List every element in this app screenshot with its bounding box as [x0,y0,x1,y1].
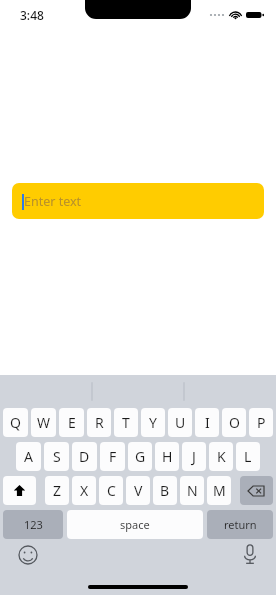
button[interactable]: L [236,442,260,471]
staticText: M [213,481,226,500]
staticText: P [257,413,266,432]
button[interactable]: K [209,442,233,471]
button[interactable]: Dictation [242,544,258,565]
staticText: W [37,413,51,432]
staticText: E [68,413,76,432]
staticText: K [217,447,226,466]
staticText: B [160,481,170,500]
button[interactable]: E [59,408,84,437]
staticText: return [224,517,257,532]
button[interactable]: Emoji [18,545,38,565]
button[interactable]: X [72,476,96,505]
button[interactable]: 123 [3,510,63,539]
staticText: V [134,481,143,500]
staticText: T [122,413,130,432]
staticText: U [175,413,186,432]
staticText: 123 [24,517,43,532]
staticText: L [244,447,252,466]
button[interactable]: F [100,442,125,471]
staticText: F [109,447,117,466]
staticText: O [229,413,240,432]
staticText: C [107,481,116,500]
button[interactable]: Q [3,408,28,437]
button[interactable]: M [207,476,231,505]
staticText: space [120,517,150,532]
button[interactable]: J [182,442,206,471]
staticText: Q [10,413,21,432]
staticText: X [80,481,89,500]
staticText: 3:48 [20,7,44,23]
button[interactable]: G [128,442,152,471]
button[interactable]: V [126,476,150,505]
button[interactable]: W [31,408,56,437]
staticText: J [192,447,196,466]
button[interactable]: return [207,510,273,539]
button[interactable]: A [16,442,41,471]
staticText: Y [149,413,157,432]
button[interactable]: Enter text [12,183,264,219]
staticText: Z [53,481,62,500]
button[interactable]: I [195,408,219,437]
staticText: N [187,481,198,500]
button[interactable]: Shift [3,476,36,505]
button[interactable]: S [44,442,69,471]
button[interactable]: D [72,442,97,471]
button[interactable]: U [168,408,192,437]
button[interactable]: T [114,408,138,437]
button[interactable]: H [155,442,179,471]
staticText: Enter text [24,193,82,210]
staticText: A [24,447,33,466]
staticText: I [205,413,210,432]
button[interactable]: Z [45,476,69,505]
staticText: D [79,447,90,466]
button[interactable]: space [67,510,203,539]
staticText: R [95,413,104,432]
staticText: S [53,447,61,466]
button[interactable]: C [99,476,123,505]
button[interactable]: P [249,408,273,437]
staticText: G [135,447,146,466]
button[interactable]: N [180,476,204,505]
button[interactable]: Y [141,408,165,437]
staticText: H [162,447,173,466]
button[interactable]: R [87,408,111,437]
button[interactable]: O [222,408,246,437]
button[interactable]: Backspace [240,476,273,505]
button[interactable]: B [153,476,177,505]
